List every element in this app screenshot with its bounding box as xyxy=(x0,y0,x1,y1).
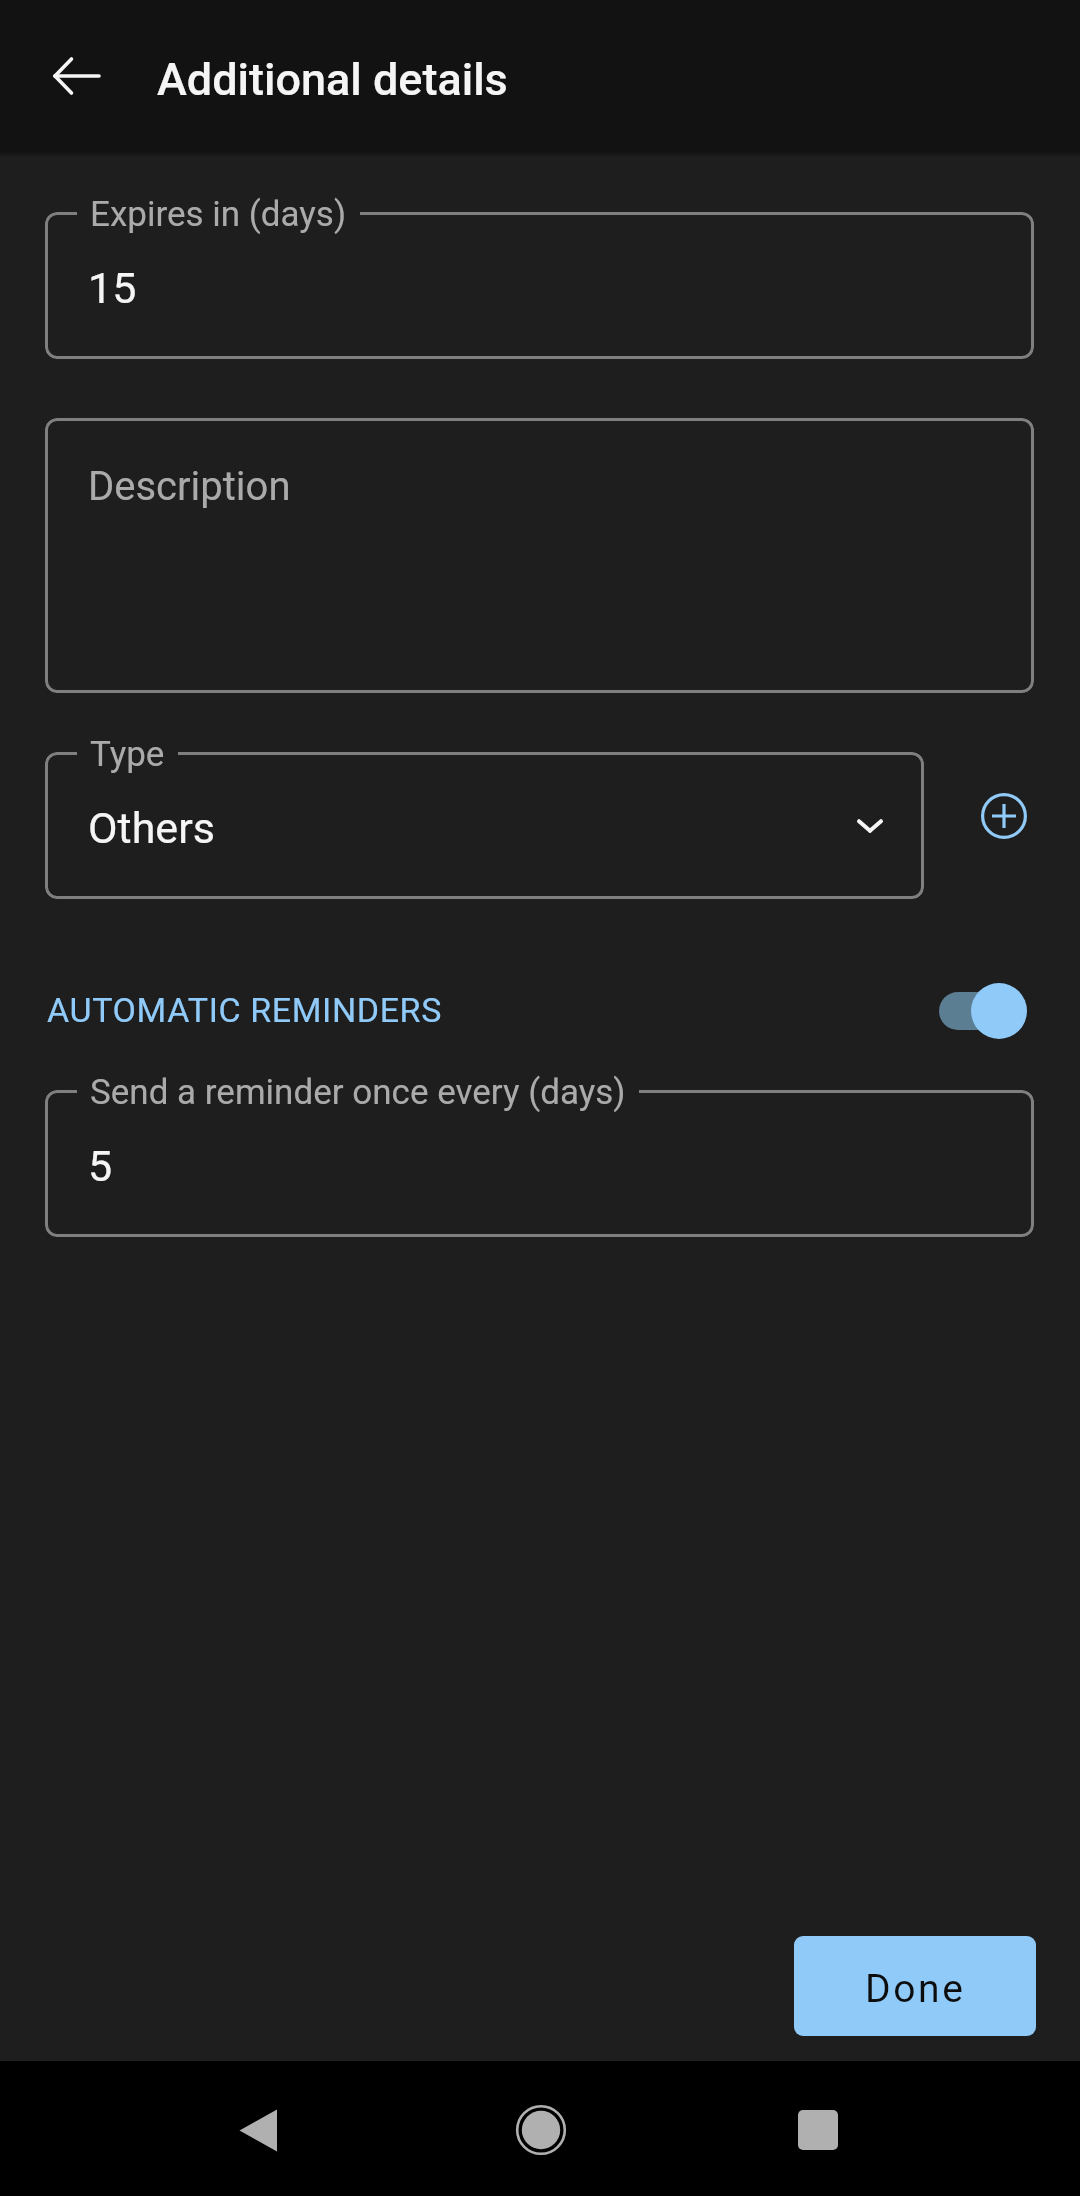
staticText: Done xyxy=(865,1966,966,2012)
staticText: Expires in (days) xyxy=(90,194,347,235)
staticText: Send a reminder once every (days) xyxy=(90,1072,626,1113)
staticText: Additional details xyxy=(157,53,508,106)
button[interactable]: Home xyxy=(496,2085,586,2175)
button[interactable]: Toggle automatic reminders xyxy=(924,970,1044,1050)
staticText: 5 xyxy=(88,1141,113,1191)
staticText: AUTOMATIC REMINDERS xyxy=(47,990,442,1030)
staticText: 15 xyxy=(88,263,137,313)
staticText: Description xyxy=(88,463,291,510)
button[interactable]: Back xyxy=(239,2108,278,2153)
button[interactable]: Navigate up xyxy=(32,31,122,121)
button[interactable]: Done xyxy=(794,1936,1036,2036)
button[interactable]: Others xyxy=(45,752,924,899)
staticText: Type xyxy=(90,734,165,775)
button[interactable]: Description xyxy=(45,418,1034,693)
button[interactable]: Recent apps xyxy=(773,2085,863,2175)
button[interactable]: 5 xyxy=(45,1090,1034,1237)
button[interactable]: Add new type xyxy=(959,771,1049,861)
staticText: Others xyxy=(88,803,215,853)
button[interactable]: 15 xyxy=(45,212,1034,359)
